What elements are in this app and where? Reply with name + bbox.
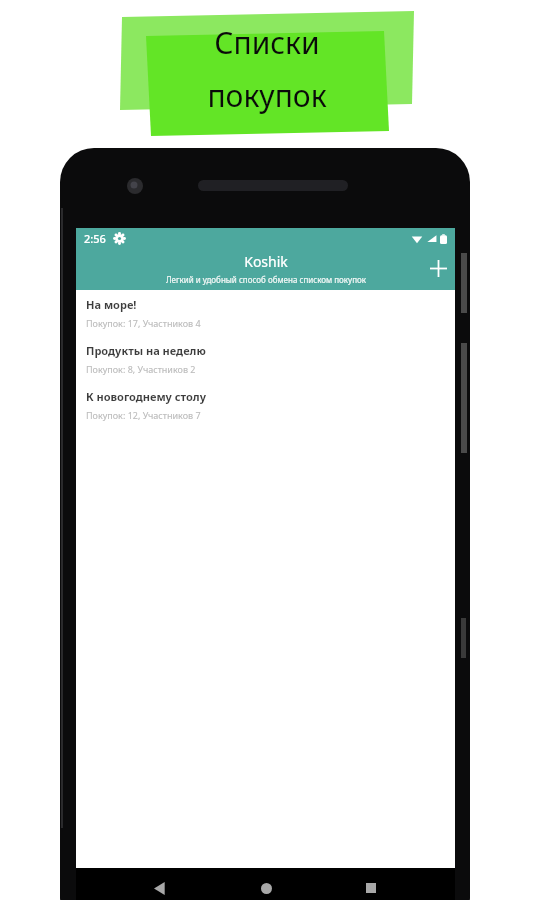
staticText: Покупок: 12, Участников 7 <box>86 409 201 421</box>
staticText: На море! <box>86 297 137 312</box>
staticText: К новогоднему столу <box>86 389 206 404</box>
button[interactable]: Home <box>244 868 288 900</box>
staticText: 2:56 <box>84 231 106 246</box>
button[interactable]: На море! <box>76 290 455 336</box>
button[interactable]: Add list <box>421 251 455 285</box>
staticText: покупок <box>207 75 327 116</box>
button[interactable]: Продукты на неделю <box>76 336 455 382</box>
button[interactable]: К новогоднему столу <box>76 382 455 428</box>
button[interactable]: Recent apps <box>349 868 393 900</box>
button[interactable]: Back <box>138 868 182 900</box>
staticText: Koshik <box>244 252 288 271</box>
staticText: Продукты на неделю <box>86 343 206 358</box>
staticText: Легкий и удобный способ обмена списком п… <box>166 274 366 285</box>
staticText: Списки <box>214 22 320 63</box>
staticText: Покупок: 8, Участников 2 <box>86 363 196 375</box>
staticText: Покупок: 17, Участников 4 <box>86 317 201 329</box>
